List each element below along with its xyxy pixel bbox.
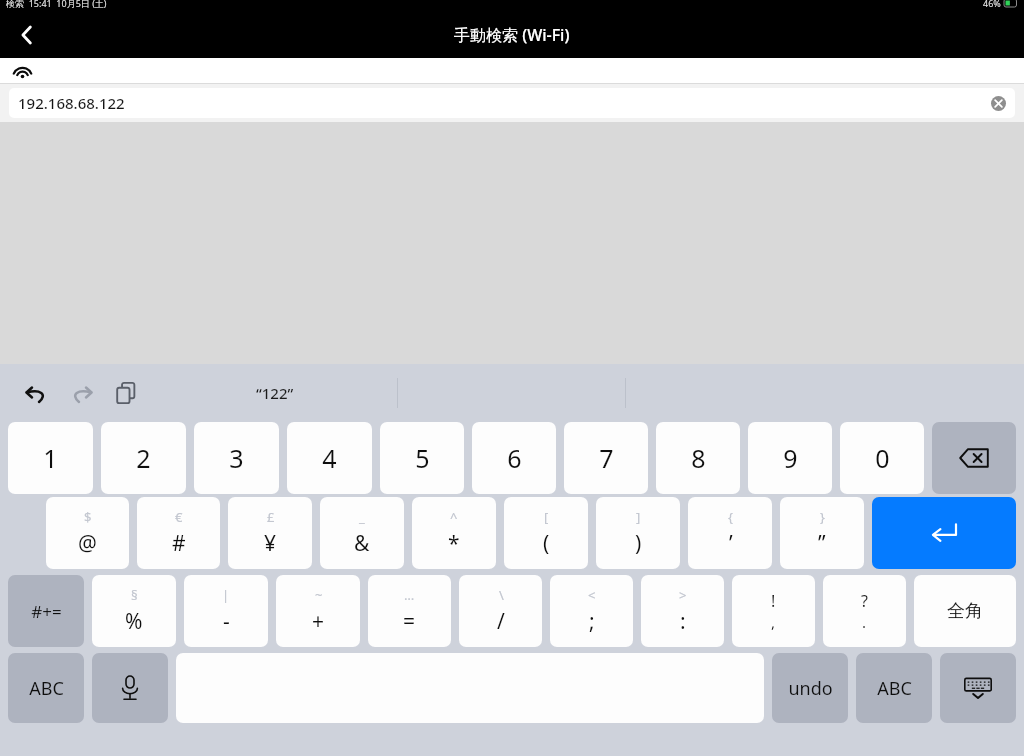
staticText: } <box>820 508 825 526</box>
button[interactable]: Wi-Fi <box>9 58 35 84</box>
button[interactable]: 3 <box>194 422 279 494</box>
staticText: ABC <box>877 676 912 701</box>
staticText: 7 <box>599 441 614 475</box>
staticText: ? <box>861 590 868 612</box>
button[interactable]: ~ <box>276 575 360 647</box>
button[interactable]: “122” <box>256 383 294 403</box>
staticText: undo <box>788 676 833 701</box>
staticText: ) <box>635 529 642 558</box>
staticText: ^ <box>450 508 458 526</box>
staticText: $ <box>84 508 92 526</box>
staticText: = <box>403 607 416 636</box>
staticText: … <box>404 586 415 604</box>
button[interactable]: € <box>137 497 220 569</box>
button[interactable]: ^ <box>412 497 496 569</box>
staticText: ] <box>636 508 641 526</box>
button[interactable]: 6 <box>472 422 556 494</box>
button[interactable]: 9 <box>748 422 832 494</box>
staticText: * <box>448 529 460 558</box>
button[interactable]: \ <box>459 575 542 647</box>
button[interactable]: 8 <box>656 422 740 494</box>
staticText: 5 <box>415 441 430 475</box>
button[interactable]: … <box>368 575 451 647</box>
staticText: | <box>222 586 230 604</box>
staticText: £ <box>267 508 275 526</box>
button[interactable]: 192.168.68.122 <box>9 88 1015 118</box>
staticText: ( <box>543 529 550 558</box>
staticText: 2 <box>136 441 151 475</box>
staticText: 4 <box>322 441 337 475</box>
staticText: { <box>728 508 733 526</box>
button[interactable]: Hide keyboard <box>940 653 1016 723</box>
staticText: : <box>680 607 686 636</box>
staticText: & <box>354 529 370 558</box>
button[interactable]: #+= <box>8 575 84 647</box>
button[interactable]: ] <box>596 497 680 569</box>
button[interactable]: Enter <box>872 497 1016 569</box>
button[interactable]: ABC <box>856 653 932 723</box>
staticText: [ <box>544 508 549 526</box>
staticText: ¥ <box>264 529 277 558</box>
staticText: @ <box>78 529 97 558</box>
button[interactable]: $ <box>46 497 129 569</box>
button[interactable]: 2 <box>101 422 186 494</box>
button[interactable]: § <box>92 575 176 647</box>
staticText: / <box>497 607 505 636</box>
staticText: 46% <box>983 0 1001 9</box>
button[interactable]: ! <box>732 575 815 647</box>
button[interactable]: Back <box>0 12 54 58</box>
button[interactable]: { <box>688 497 772 569</box>
staticText: 3 <box>229 441 244 475</box>
staticText: , <box>771 612 776 632</box>
staticText: > <box>679 586 687 604</box>
button[interactable]: £ <box>228 497 312 569</box>
staticText: 全角 <box>947 600 983 623</box>
staticText: ABC <box>29 676 64 701</box>
button[interactable]: Voice input <box>92 653 168 723</box>
button[interactable]: 1 <box>8 422 93 494</box>
staticText: ” <box>818 529 826 558</box>
button[interactable]: } <box>780 497 864 569</box>
button[interactable]: Copy <box>106 373 146 413</box>
button[interactable]: 7 <box>564 422 648 494</box>
staticText: 1 <box>43 441 58 475</box>
staticText: § <box>131 586 138 604</box>
staticText: _ <box>359 508 365 526</box>
staticText: 9 <box>783 441 798 475</box>
staticText: #+= <box>31 600 62 623</box>
button[interactable]: > <box>641 575 724 647</box>
button[interactable]: < <box>550 575 633 647</box>
button[interactable]: | <box>184 575 268 647</box>
button[interactable]: Redo <box>61 373 101 413</box>
button[interactable]: Undo <box>16 373 56 413</box>
staticText: ! <box>771 590 776 612</box>
staticText: + <box>312 607 325 636</box>
button[interactable]: 4 <box>287 422 372 494</box>
staticText: 192.168.68.122 <box>18 93 125 113</box>
button[interactable]: undo <box>772 653 848 723</box>
button[interactable]: ABC <box>8 653 84 723</box>
staticText: 8 <box>691 441 706 475</box>
staticText: ~ <box>315 586 323 604</box>
button[interactable]: 全角 <box>914 575 1016 647</box>
staticText: 6 <box>507 441 522 475</box>
button[interactable]: Clear text <box>987 92 1009 114</box>
staticText: < <box>588 586 596 604</box>
staticText: 検索 15:41 10月5日 (土) <box>6 0 107 9</box>
button[interactable]: Backspace <box>932 422 1016 494</box>
staticText: \ <box>499 586 504 604</box>
button[interactable]: 5 <box>380 422 464 494</box>
staticText: ; <box>589 607 595 636</box>
button[interactable]: 0 <box>840 422 924 494</box>
staticText: ’ <box>729 529 733 558</box>
staticText: - <box>223 607 230 636</box>
staticText: # <box>172 529 186 558</box>
staticText: . <box>862 612 867 632</box>
staticText: 手動検索 (Wi-Fi) <box>454 24 570 46</box>
button[interactable]: _ <box>320 497 404 569</box>
staticText: 0 <box>875 441 890 475</box>
button[interactable]: [ <box>504 497 588 569</box>
staticText: € <box>175 508 183 526</box>
button[interactable]: ? <box>823 575 906 647</box>
